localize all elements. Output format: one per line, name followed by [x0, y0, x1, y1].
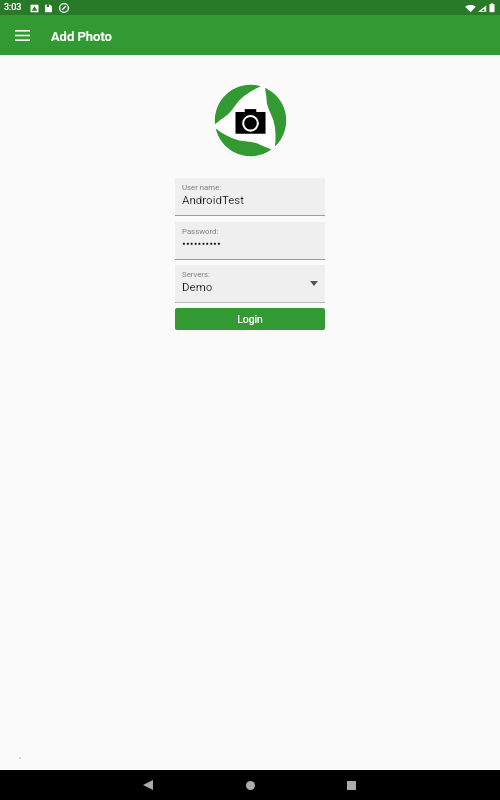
button[interactable]: Home	[227, 770, 273, 800]
staticText: Demo	[182, 280, 213, 293]
staticText: AndroidTest	[182, 193, 245, 206]
button[interactable]: Servers:	[175, 265, 325, 303]
button[interactable]: Recent apps	[328, 770, 374, 800]
button[interactable]: Back	[125, 770, 171, 800]
button[interactable]: Login	[175, 308, 325, 330]
staticText: Login	[237, 313, 263, 325]
staticText: Servers:	[182, 270, 210, 279]
staticText: User name:	[182, 183, 222, 192]
staticText: Add Photo	[51, 29, 112, 44]
button[interactable]: Password:	[175, 222, 325, 260]
button[interactable]: Open navigation menu	[10, 23, 34, 47]
staticText: Password:	[182, 227, 219, 236]
staticText: 3:03	[4, 2, 22, 13]
staticText: ••••••••••	[182, 237, 221, 250]
button[interactable]: User name:	[175, 178, 325, 216]
